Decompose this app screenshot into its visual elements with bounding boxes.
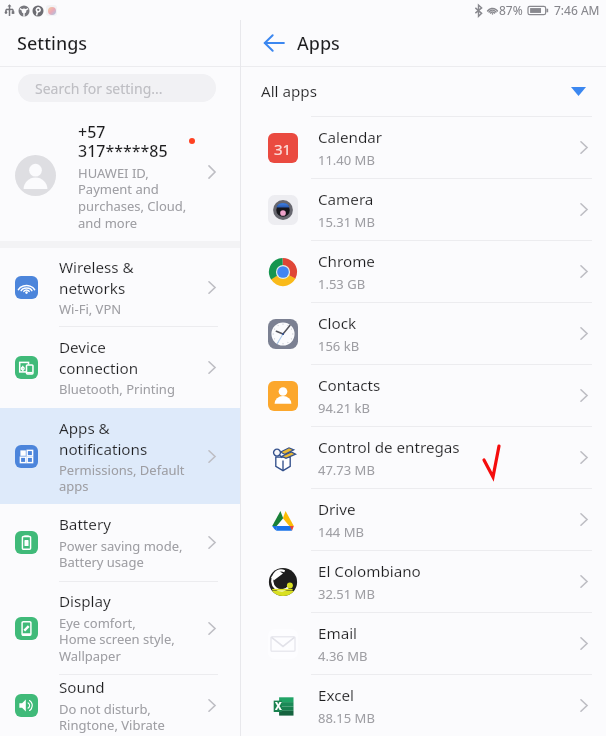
button[interactable]: Apps & notifications xyxy=(0,408,240,504)
staticText: Excel xyxy=(318,685,354,706)
staticText: Camera xyxy=(318,189,374,210)
staticText: Device connection xyxy=(59,337,139,378)
staticText: Battery xyxy=(59,514,111,535)
button[interactable]: Clock xyxy=(241,303,606,364)
button[interactable]: Battery xyxy=(0,504,240,581)
button[interactable]: Drive xyxy=(241,489,606,550)
staticText: 7:46 AM xyxy=(554,2,600,18)
staticText: Do not disturb, Ringtone, Vibrate xyxy=(59,700,165,734)
button[interactable]: Wireless & networks xyxy=(0,248,240,326)
staticText: Bluetooth, Printing xyxy=(59,380,175,398)
staticText: 87% xyxy=(499,2,523,18)
button[interactable]: Display xyxy=(0,582,240,674)
staticText: Contacts xyxy=(318,375,381,396)
staticText: 144 MB xyxy=(318,523,364,541)
staticText: X xyxy=(275,699,282,713)
button[interactable]: Device connection xyxy=(0,327,240,408)
staticText: Apps & notifications xyxy=(59,418,148,459)
staticText: Settings xyxy=(17,31,88,56)
button[interactable]: Camera xyxy=(241,179,606,240)
staticText: Eye comfort, Home screen style, Wallpape… xyxy=(59,614,175,665)
button[interactable]: Control de entregas xyxy=(241,427,606,488)
button[interactable]: All apps xyxy=(241,67,606,116)
button[interactable]: +57 317*****85 xyxy=(0,102,240,241)
staticText: +57 317*****85 xyxy=(78,121,168,162)
button[interactable]: El Colombiano xyxy=(241,551,606,612)
staticText: Power saving mode, Battery usage xyxy=(59,537,183,571)
staticText: Permissions, Default apps xyxy=(59,461,185,495)
staticText: Display xyxy=(59,591,111,612)
staticText: Apps xyxy=(297,31,340,56)
staticText: 15.31 MB xyxy=(318,213,375,231)
staticText: 88.15 MB xyxy=(318,709,375,727)
staticText: Search for setting... xyxy=(35,79,163,98)
button[interactable]: Sound xyxy=(0,675,240,736)
staticText: HUAWEI ID, Payment and purchases, Cloud,… xyxy=(78,164,187,232)
staticText: Wi-Fi, VPN xyxy=(59,300,122,318)
button[interactable]: Contacts xyxy=(241,365,606,426)
button[interactable]: Back xyxy=(257,26,291,60)
staticText: Clock xyxy=(318,313,357,334)
staticText: Email xyxy=(318,623,358,644)
staticText: Calendar xyxy=(318,127,383,148)
button[interactable]: Email xyxy=(241,613,606,674)
staticText: 94.21 kB xyxy=(318,399,371,417)
staticText: Drive xyxy=(318,499,356,520)
staticText: 31 xyxy=(274,139,292,159)
staticText: 11.40 MB xyxy=(318,151,375,169)
staticText: 47.73 MB xyxy=(318,461,375,479)
button[interactable]: Search for setting... xyxy=(18,74,216,102)
staticText: Control de entregas xyxy=(318,437,460,458)
button[interactable]: Chrome xyxy=(241,241,606,302)
button[interactable]: X xyxy=(241,675,606,736)
staticText: Wireless & networks xyxy=(59,257,134,298)
staticText: 1.53 GB xyxy=(318,275,366,293)
staticText: 32.51 MB xyxy=(318,585,375,603)
staticText: Chrome xyxy=(318,251,375,272)
staticText: 4.36 MB xyxy=(318,647,368,665)
button[interactable]: 31 xyxy=(241,117,606,178)
staticText: 156 kB xyxy=(318,337,360,355)
staticText: El Colombiano xyxy=(318,561,421,582)
staticText: All apps xyxy=(261,81,317,102)
staticText: Sound xyxy=(59,677,105,698)
